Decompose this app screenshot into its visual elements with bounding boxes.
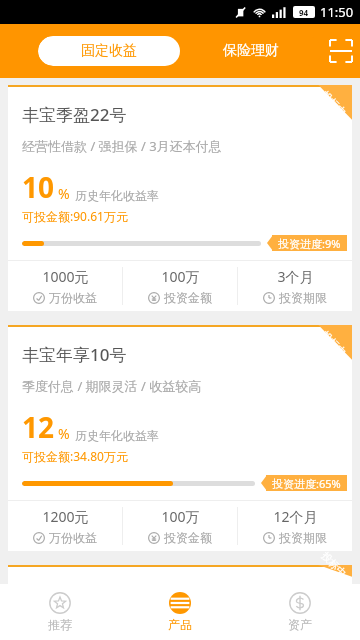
staticText: 万份收益 — [49, 530, 97, 545]
staticText: 丰宝年享10号 — [22, 343, 127, 366]
button[interactable]: 保险理财 — [180, 36, 322, 66]
staticText: 投标中 — [319, 88, 349, 119]
staticText: 投资进度:65% — [272, 476, 341, 491]
staticText: % — [58, 184, 70, 203]
staticText: 1200元 — [42, 507, 89, 526]
staticText: 100万 — [161, 507, 200, 526]
staticText: 94 — [299, 7, 309, 18]
staticText: 推荐 — [48, 617, 72, 632]
button[interactable]: Scan — [322, 24, 360, 78]
staticText: 1000元 — [42, 267, 89, 286]
staticText: 11:50 — [320, 3, 354, 21]
staticText: 经营性借款 / 强担保 / 3月还本付息 — [22, 137, 222, 155]
button[interactable] — [8, 565, 352, 584]
button[interactable]: 资产 — [240, 584, 360, 640]
staticText: 10 — [22, 168, 55, 206]
staticText: 保险理财 — [223, 42, 279, 60]
button[interactable]: 丰宝季盈22号 — [8, 85, 352, 311]
staticText: 历史年化收益率 — [75, 428, 159, 443]
staticText: 投资期限 — [279, 530, 327, 545]
staticText: 投资期限 — [279, 290, 327, 305]
staticText: 丰宝季盈22号 — [22, 103, 127, 126]
staticText: 产品 — [168, 617, 192, 632]
staticText: 历史年化收益率 — [75, 188, 159, 203]
staticText: 万份收益 — [49, 290, 97, 305]
staticText: 100万 — [161, 267, 200, 286]
button[interactable]: 固定收益 — [38, 36, 180, 66]
staticText: 12 — [22, 408, 55, 446]
staticText: 可投金额:34.80万元 — [22, 448, 128, 464]
staticText: 固定收益 — [81, 42, 137, 60]
staticText: 可投金额:90.61万元 — [22, 208, 128, 224]
staticText: 资产 — [288, 617, 312, 632]
staticText: 季度付息 / 期限灵活 / 收益较高 — [22, 377, 202, 395]
staticText: 投标中 — [319, 549, 349, 580]
staticText: % — [58, 424, 70, 443]
staticText: 3个月 — [277, 267, 314, 286]
staticText: 投标中 — [319, 328, 349, 359]
button[interactable]: 推荐 — [0, 584, 120, 640]
button[interactable]: 产品 — [120, 584, 240, 640]
staticText: 投资金额 — [164, 530, 212, 545]
staticText: 12个月 — [273, 507, 318, 526]
staticText: 投资金额 — [164, 290, 212, 305]
staticText: 投资进度:9% — [278, 236, 341, 251]
button[interactable]: 丰宝年享10号 — [8, 325, 352, 551]
